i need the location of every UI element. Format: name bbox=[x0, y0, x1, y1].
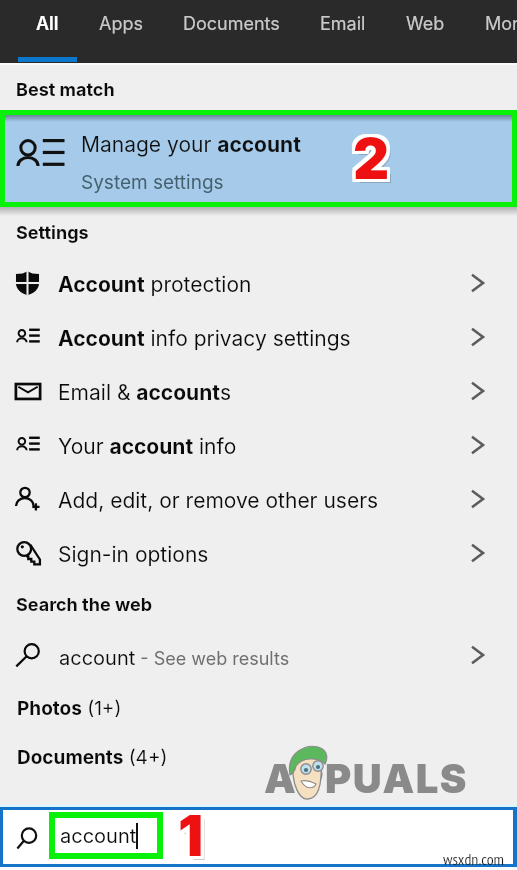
staticText: Documents bbox=[183, 13, 280, 35]
staticText: 1 bbox=[178, 805, 204, 870]
button[interactable]: More bbox=[465, 0, 517, 63]
staticText: Best match bbox=[16, 79, 115, 101]
staticText: All bbox=[36, 13, 59, 35]
button[interactable]: Sign-in options bbox=[0, 526, 517, 580]
staticText: account bbox=[60, 824, 137, 848]
staticText: Your account info bbox=[58, 434, 237, 459]
button[interactable]: Documents bbox=[163, 0, 300, 63]
staticText: 1 bbox=[181, 805, 207, 870]
staticText: 2 bbox=[357, 129, 394, 197]
staticText: Sign-in options bbox=[58, 542, 209, 567]
staticText: account - See web results bbox=[59, 646, 290, 670]
button[interactable]: Email bbox=[300, 0, 386, 63]
staticText: APPUALS bbox=[264, 754, 468, 802]
staticText: Add, edit, or remove other users bbox=[58, 488, 379, 513]
staticText: System settings bbox=[81, 171, 224, 194]
staticText: Email bbox=[320, 13, 366, 35]
staticText: 1 bbox=[175, 802, 201, 870]
staticText: Email & accounts bbox=[58, 380, 232, 405]
staticText: 2 bbox=[350, 125, 387, 193]
staticText: 2 bbox=[356, 125, 393, 193]
staticText: Apps bbox=[99, 13, 143, 35]
staticText: 1 bbox=[178, 799, 204, 867]
staticText: wsxdn.com bbox=[443, 849, 504, 870]
staticText: Account info privacy settings bbox=[58, 326, 351, 351]
staticText: 2 bbox=[353, 125, 390, 193]
button[interactable]: Your account info bbox=[0, 418, 517, 472]
staticText: 1 bbox=[181, 799, 207, 867]
staticText: Settings bbox=[16, 222, 89, 244]
staticText: 1 bbox=[175, 799, 201, 867]
staticText: 2 bbox=[353, 128, 390, 196]
staticText: More bbox=[485, 13, 517, 35]
button[interactable]: Email & accounts bbox=[0, 364, 517, 418]
button[interactable]: Manage your account bbox=[0, 110, 517, 207]
staticText: Account protection bbox=[58, 272, 252, 297]
button[interactable]: Apps bbox=[79, 0, 163, 63]
button[interactable]: Documents (4+) bbox=[0, 731, 517, 780]
staticText: Web bbox=[406, 13, 445, 35]
staticText: Photos (1+) bbox=[17, 697, 122, 720]
staticText: Search the web bbox=[16, 594, 153, 616]
button[interactable]: Account info privacy settings bbox=[0, 310, 517, 364]
staticText: 1 bbox=[178, 802, 204, 870]
staticText: 2 bbox=[350, 128, 387, 196]
staticText: Manage your account bbox=[81, 132, 301, 157]
button[interactable]: All bbox=[16, 0, 79, 63]
button[interactable]: Photos (1+) bbox=[0, 682, 517, 731]
button[interactable]: Web bbox=[386, 0, 465, 63]
button[interactable]: Add, edit, or remove other users bbox=[0, 472, 517, 526]
staticText: Documents (4+) bbox=[17, 746, 168, 769]
staticText: 1 bbox=[175, 805, 201, 870]
button[interactable]: account - See web results bbox=[0, 628, 517, 682]
staticText: 2 bbox=[356, 128, 393, 196]
button[interactable]: Account protection bbox=[0, 256, 517, 310]
staticText: 1 bbox=[181, 802, 207, 870]
button[interactable]: Search box bbox=[0, 810, 517, 864]
staticText: 1 bbox=[182, 806, 208, 870]
staticText: 2 bbox=[350, 122, 387, 190]
staticText: 2 bbox=[353, 122, 390, 190]
staticText: 2 bbox=[356, 122, 393, 190]
